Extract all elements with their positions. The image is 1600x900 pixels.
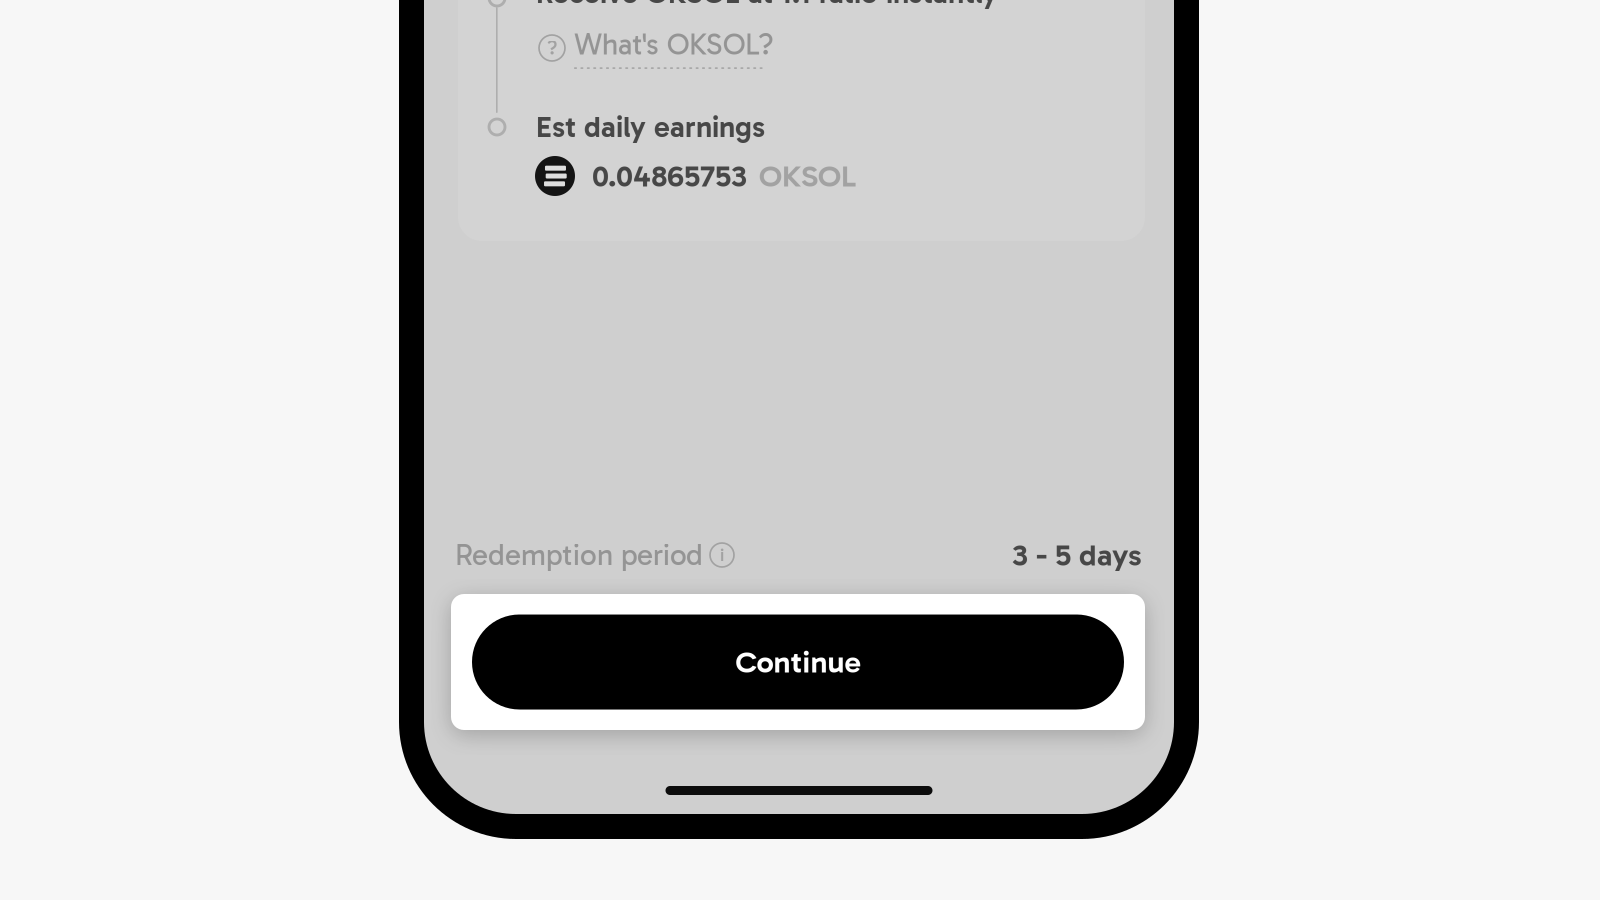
staticText: 0.04865753: [592, 158, 747, 194]
button[interactable]: About the redemption period: [710, 543, 734, 567]
staticText: ?: [547, 36, 557, 60]
staticText: 3 - 5 days: [1012, 537, 1142, 573]
staticText: Est daily earnings: [536, 109, 765, 145]
staticText: OKSOL: [759, 158, 856, 194]
staticText: Continue: [735, 644, 860, 680]
staticText: Redemption period: [455, 537, 703, 573]
staticText: What's OKSOL?: [574, 27, 774, 62]
staticText: Receive OKSOL at 1:1 ratio instantly: [536, 0, 998, 11]
button[interactable]: Continue: [472, 614, 1124, 709]
staticText: i: [720, 544, 724, 566]
button[interactable]: ?: [539, 33, 839, 63]
